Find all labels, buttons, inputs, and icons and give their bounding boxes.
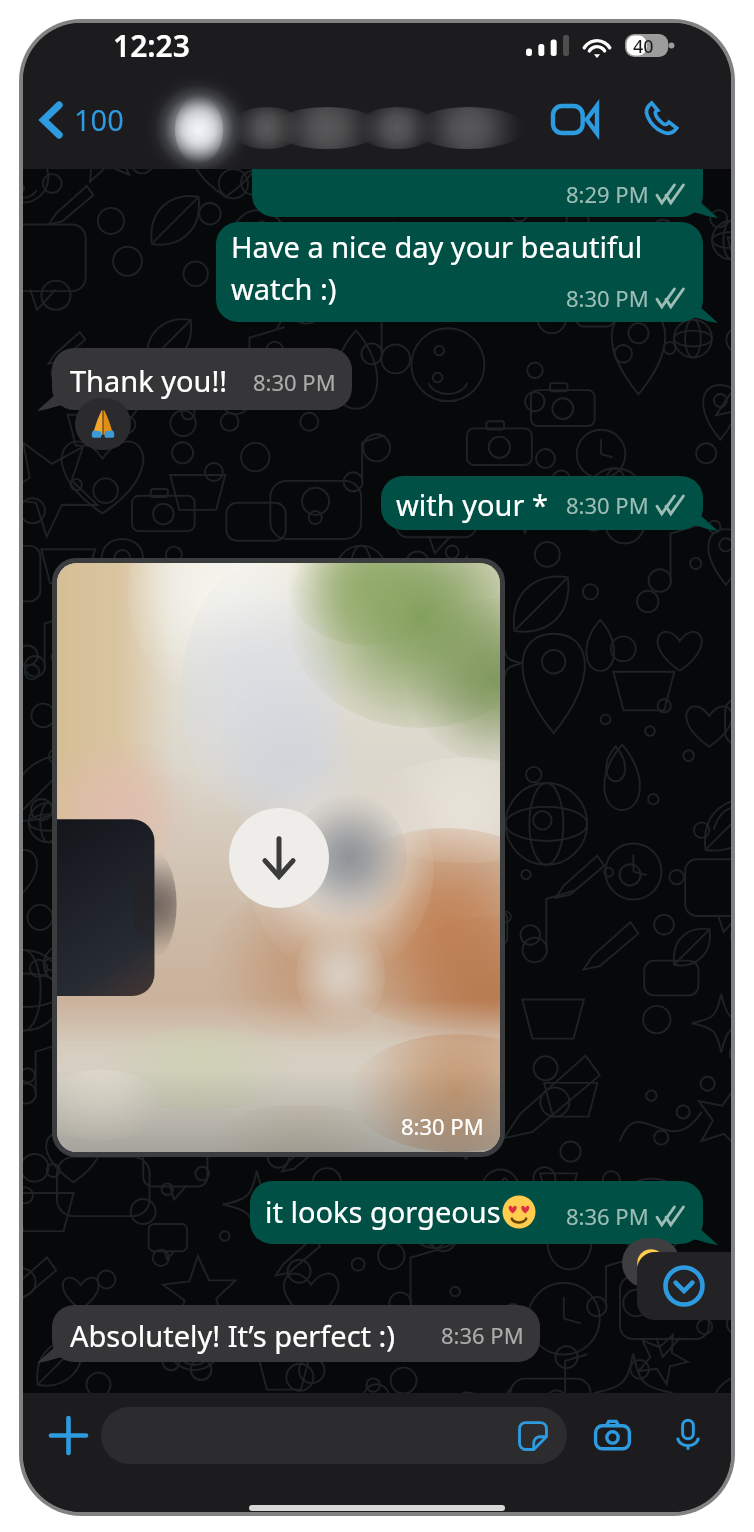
button[interactable]: it looks gorgeous [250, 1181, 703, 1244]
button[interactable] [101, 1407, 567, 1464]
staticText: with your * [396, 485, 548, 524]
button[interactable]: Attach [35, 1402, 101, 1468]
button[interactable]: Absolutely! It’s perfect :) [52, 1305, 540, 1362]
staticText: 8:29 PM [566, 179, 649, 209]
button[interactable]: Reaction [75, 398, 131, 450]
staticText: 8:30 PM [566, 490, 649, 520]
button[interactable]: Download [229, 808, 329, 908]
button[interactable]: Voice call [631, 90, 689, 148]
staticText: Thank you!! [70, 361, 228, 400]
button[interactable]: 100 [37, 90, 128, 149]
staticText: 8:36 PM [566, 1201, 649, 1231]
button[interactable]: Scroll to bottom [637, 1252, 731, 1320]
staticText: it looks gorgeous [265, 1192, 501, 1231]
button[interactable]: Download [57, 563, 500, 1152]
staticText: 40 [633, 34, 654, 57]
staticText: 8:30 PM [401, 1111, 484, 1141]
button[interactable]: Have a nice day your beautiful [216, 222, 703, 322]
button[interactable]: Thank you!! [52, 348, 352, 410]
button[interactable]: with your * [381, 476, 703, 530]
button[interactable]: Voice message [657, 1404, 719, 1466]
staticText: watch :) [231, 269, 337, 308]
staticText: 100 [74, 100, 124, 139]
button[interactable]: Camera [567, 1393, 657, 1477]
staticText: 8:30 PM [566, 283, 649, 313]
staticText: 8:30 PM [253, 367, 336, 397]
staticText: 8:36 PM [441, 1320, 524, 1350]
staticText: Have a nice day your beautiful [231, 227, 643, 266]
button[interactable]: Reaction [622, 1238, 680, 1288]
staticText: 12:23 [113, 25, 190, 66]
staticText: Absolutely! It’s perfect :) [70, 1316, 396, 1355]
button[interactable]: Video call [546, 90, 604, 148]
button[interactable]: 8:29 PM [252, 169, 703, 217]
